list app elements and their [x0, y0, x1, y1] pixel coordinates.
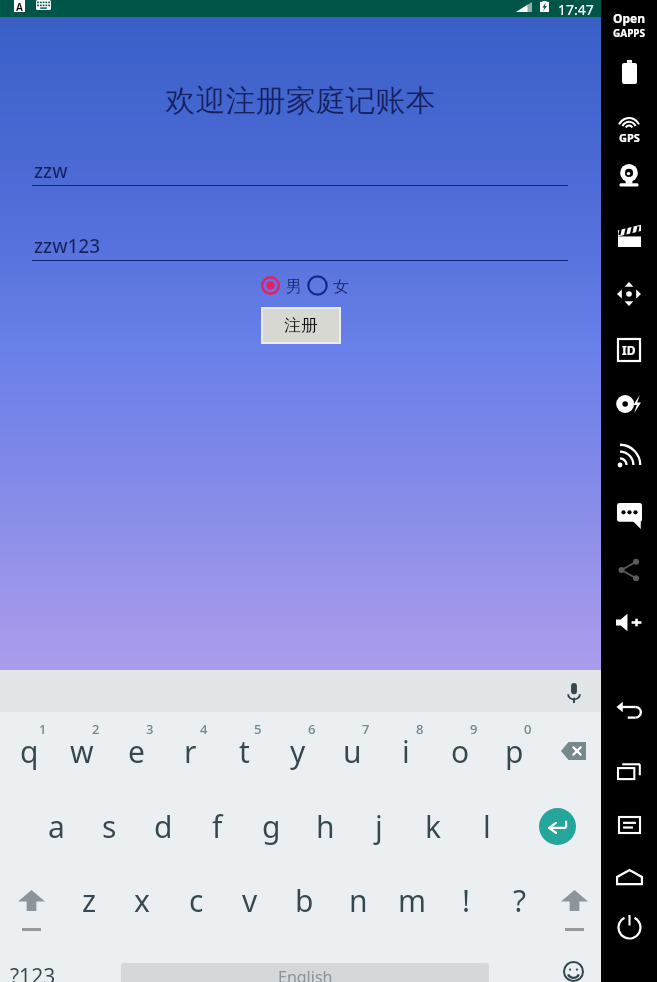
staticText: d	[154, 806, 173, 847]
staticText: c	[189, 880, 204, 921]
button[interactable]: Messages	[601, 494, 657, 538]
staticText: b	[295, 880, 314, 921]
button[interactable]: Back	[601, 688, 657, 732]
staticText: g	[262, 806, 281, 847]
button[interactable]: Home	[601, 855, 657, 899]
button[interactable]: a	[29, 790, 83, 862]
button[interactable]: Take snapshot	[601, 382, 657, 426]
staticText: 注册	[284, 315, 318, 336]
button[interactable]: Power	[601, 905, 657, 949]
button[interactable]: 9	[433, 716, 487, 794]
button[interactable]: Recents	[601, 749, 657, 793]
button[interactable]: 1	[2, 716, 56, 794]
button[interactable]: Move	[601, 272, 657, 316]
staticText: 9	[470, 720, 478, 738]
staticText: ID	[622, 342, 636, 358]
staticText: k	[425, 806, 442, 847]
button[interactable]: Backspace	[545, 712, 599, 790]
button[interactable]: 8	[379, 716, 433, 794]
staticText: z	[82, 880, 97, 921]
button[interactable]: 女	[306, 274, 349, 297]
button[interactable]: Voice input	[553, 672, 595, 714]
staticText: t	[239, 731, 250, 772]
button[interactable]: Battery	[601, 50, 657, 94]
button[interactable]: !	[439, 863, 493, 937]
staticText: 17:47	[558, 0, 594, 17]
staticText: !	[462, 880, 471, 921]
staticText: 1	[39, 720, 47, 738]
staticText: l	[483, 806, 491, 847]
button[interactable]: Menu	[601, 803, 657, 847]
staticText: 3	[146, 720, 154, 738]
button[interactable]: Cellular	[601, 434, 657, 478]
button[interactable]: Enter	[530, 790, 584, 862]
staticText: 7	[362, 720, 370, 738]
staticText: x	[134, 880, 150, 921]
button[interactable]: Volume up	[601, 600, 657, 644]
staticText: j	[375, 806, 383, 847]
button[interactable]: h	[298, 790, 352, 862]
button[interactable]: 4	[163, 716, 217, 794]
staticText: p	[505, 731, 524, 772]
staticText: 5	[254, 720, 262, 738]
staticText: s	[102, 806, 117, 847]
staticText: zzw	[34, 158, 68, 184]
staticText: 4	[200, 720, 208, 738]
button[interactable]: d	[136, 790, 190, 862]
button[interactable]: 7	[325, 716, 379, 794]
button[interactable]: j	[352, 790, 406, 862]
staticText: v	[242, 880, 258, 921]
button[interactable]: v	[223, 863, 277, 937]
staticText: 欢迎注册家庭记账本	[0, 82, 601, 120]
staticText: 2	[92, 720, 100, 738]
button[interactable]: 5	[217, 716, 271, 794]
button[interactable]: c	[169, 863, 223, 937]
staticText: zzw123	[34, 233, 101, 259]
button[interactable]: 注册	[263, 309, 339, 342]
button[interactable]: 6	[271, 716, 325, 794]
button[interactable]: m	[385, 863, 439, 937]
button[interactable]: Share	[601, 548, 657, 592]
staticText: English	[278, 966, 333, 982]
button[interactable]: GPS	[601, 118, 657, 145]
button[interactable]: Record screen	[601, 213, 657, 257]
button[interactable]: s	[82, 790, 136, 862]
staticText: a	[48, 806, 65, 847]
button[interactable]: 3	[109, 716, 163, 794]
staticText: n	[349, 880, 368, 921]
staticText: A	[16, 0, 23, 12]
button[interactable]: ?	[493, 863, 547, 937]
button[interactable]: English	[121, 963, 489, 982]
button[interactable]: 0	[487, 716, 541, 794]
staticText: y	[290, 731, 306, 772]
staticText: Open	[613, 10, 646, 26]
staticText: w	[70, 731, 94, 772]
button[interactable]: 2	[55, 716, 109, 794]
button[interactable]: b	[277, 863, 331, 937]
button[interactable]: x	[115, 863, 169, 937]
button[interactable]: Camera	[601, 154, 657, 198]
staticText: f	[212, 806, 223, 847]
staticText: 8	[416, 720, 424, 738]
button[interactable]: n	[331, 863, 385, 937]
staticText: GAPPS	[613, 26, 646, 40]
staticText: q	[20, 731, 39, 772]
button[interactable]: 男	[259, 274, 302, 297]
staticText: GPS	[619, 130, 640, 145]
button[interactable]: ID	[601, 328, 657, 372]
button[interactable]: z	[62, 863, 116, 937]
button[interactable]: Emoji	[552, 950, 594, 982]
staticText: r	[184, 731, 197, 772]
staticText: ?	[513, 880, 527, 921]
staticText: 女	[333, 277, 349, 297]
button[interactable]: Shift	[547, 863, 601, 937]
button[interactable]: k	[406, 790, 460, 862]
staticText: u	[343, 731, 362, 772]
staticText: h	[316, 806, 335, 847]
button[interactable]: ?123	[0, 940, 62, 982]
staticText: 0	[524, 720, 532, 738]
button[interactable]: l	[460, 790, 514, 862]
button[interactable]: f	[190, 790, 244, 862]
button[interactable]: Shift	[4, 863, 58, 937]
button[interactable]: g	[244, 790, 298, 862]
